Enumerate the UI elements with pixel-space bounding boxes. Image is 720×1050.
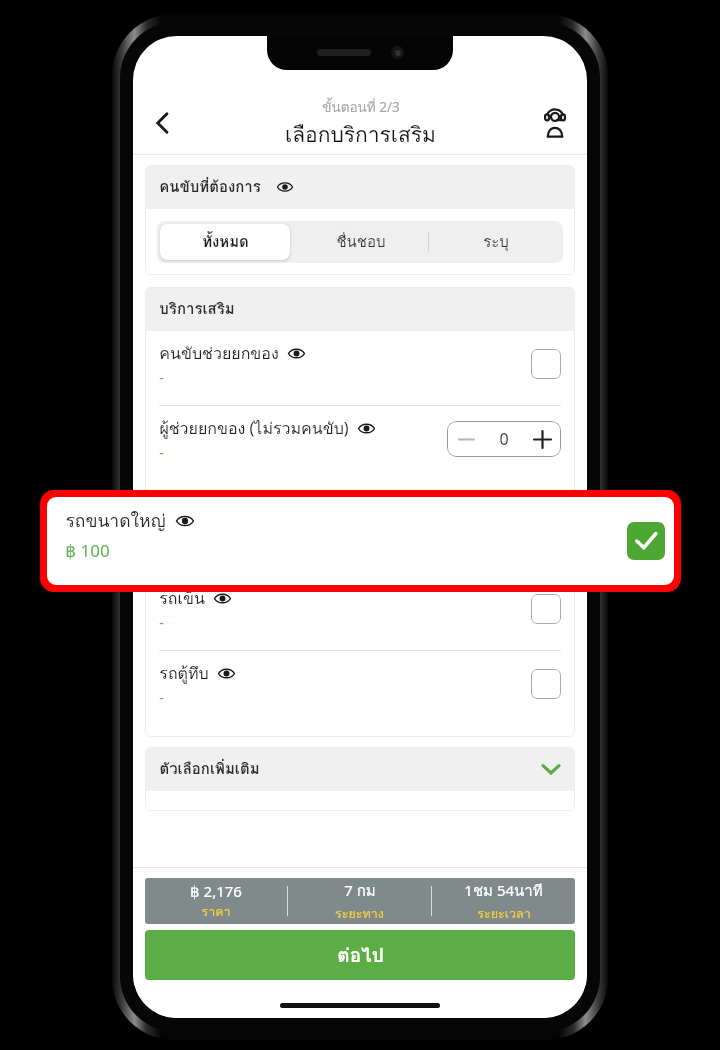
staticText: ทั้งหมด (202, 230, 249, 254)
staticText: - (159, 613, 164, 632)
staticText: ระบุ (483, 230, 509, 254)
staticText: ฿ 100 (65, 539, 110, 562)
staticText: ตัวเลือกเพิ่มเติม (159, 757, 260, 781)
staticText: ระยะเวลา (477, 904, 531, 924)
button[interactable]: Toggle รถตู้ทึบ (531, 669, 561, 699)
staticText: รถตู้ทึบ (159, 661, 209, 686)
staticText: 0 (499, 428, 509, 450)
button[interactable]: Toggle รถเข็น (531, 594, 561, 624)
button[interactable]: Support (533, 101, 577, 145)
staticText: ฿ 2,176 (190, 881, 242, 901)
button[interactable]: ชื่นชอบ (293, 221, 428, 263)
staticText: 1ชม 54นาที (464, 879, 543, 903)
staticText: - (159, 688, 164, 707)
staticText: เลือกบริการเสริม (285, 118, 436, 151)
staticText: ชื่นชอบ (336, 230, 386, 254)
button[interactable]: รถตู้ทึบ (145, 651, 575, 725)
staticText: 7 กม (344, 879, 376, 903)
button[interactable]: Toggle คนขับช่วยยกของ (531, 349, 561, 379)
staticText: - (159, 368, 164, 387)
button[interactable]: ระบุ (428, 221, 563, 263)
staticText: ระยะทาง (335, 904, 384, 924)
staticText: คนขับช่วยยกของ (159, 341, 279, 366)
staticText: คนขับที่ต้องการ (159, 175, 261, 199)
staticText: รถเข็น (159, 586, 205, 611)
staticText: รถขนาดใหญ่ (65, 507, 166, 535)
staticText: ขั้นตอนที่ 2/3 (322, 96, 400, 117)
staticText: ผู้ช่วยยกของ (ไม่รวมคนขับ) (159, 416, 349, 441)
button[interactable]: ผู้ช่วยยกของ (ไม่รวมคนขับ) (145, 406, 575, 480)
staticText: - (159, 443, 164, 462)
button[interactable]: Back (141, 101, 185, 145)
button[interactable]: รถเข็น (145, 576, 575, 650)
button[interactable]: ต่อไป (145, 930, 575, 980)
button[interactable]: ทั้งหมด (160, 224, 290, 260)
staticText: บริการเสริม (159, 297, 235, 321)
button[interactable]: Decrease (447, 421, 485, 457)
staticText: ต่อไป (337, 940, 384, 970)
button[interactable]: ตัวเลือกเพิ่มเติม (145, 747, 575, 791)
button[interactable]: รถขนาดใหญ่ (47, 497, 674, 585)
button[interactable]: Increase (523, 421, 561, 457)
button[interactable]: Selected (627, 522, 665, 560)
button[interactable]: คนขับช่วยยกของ (145, 331, 575, 405)
staticText: ราคา (201, 902, 231, 922)
